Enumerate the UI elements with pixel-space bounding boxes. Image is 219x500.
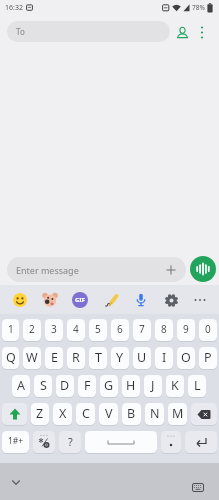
button[interactable]: P: [199, 347, 217, 369]
button[interactable]: G: [100, 375, 118, 397]
button[interactable]: 9: [177, 319, 195, 341]
button[interactable]: D: [56, 375, 74, 397]
button[interactable]: H: [122, 375, 140, 397]
button[interactable]: [196, 23, 208, 41]
button[interactable]: 8: [155, 319, 173, 341]
button[interactable]: [173, 23, 191, 41]
staticText: K: [171, 377, 179, 394]
button[interactable]: I: [155, 347, 173, 369]
staticText: N: [150, 405, 160, 422]
button[interactable]: [193, 293, 207, 307]
staticText: I: [162, 349, 167, 366]
button[interactable]: 1#+: [2, 431, 29, 453]
staticText: 16:32: [5, 3, 23, 13]
button[interactable]: [161, 431, 181, 453]
staticText: W: [26, 349, 38, 366]
staticText: 7: [139, 322, 145, 336]
staticText: 9: [183, 322, 189, 336]
staticText: ?: [68, 434, 73, 449]
button[interactable]: [133, 292, 149, 308]
staticText: Z: [36, 405, 44, 422]
button[interactable]: [42, 292, 58, 308]
button[interactable]: [190, 479, 206, 495]
button[interactable]: [185, 431, 217, 453]
staticText: Q: [6, 349, 16, 366]
button[interactable]: W: [23, 347, 41, 369]
staticText: 4: [73, 322, 79, 336]
button[interactable]: V: [99, 403, 118, 425]
button[interactable]: [2, 403, 27, 425]
staticText: X: [59, 405, 67, 422]
staticText: 3: [51, 322, 57, 336]
button[interactable]: U: [133, 347, 151, 369]
staticText: 1#+: [8, 435, 24, 447]
button[interactable]: [12, 292, 28, 308]
button[interactable]: F: [78, 375, 96, 397]
button[interactable]: X: [53, 403, 72, 425]
staticText: B: [127, 405, 136, 422]
button[interactable]: [85, 431, 157, 453]
button[interactable]: B: [122, 403, 141, 425]
button[interactable]: ?: [59, 431, 81, 453]
staticText: D: [60, 377, 70, 394]
staticText: C: [82, 405, 90, 422]
staticText: T: [95, 349, 102, 366]
staticText: 1: [8, 322, 14, 336]
staticText: U: [137, 349, 147, 366]
button[interactable]: S: [34, 375, 52, 397]
button[interactable]: Q: [2, 347, 19, 369]
button[interactable]: 7: [133, 319, 151, 341]
staticText: P: [204, 349, 212, 366]
staticText: Enter message: [16, 264, 79, 276]
button[interactable]: [103, 292, 119, 308]
button[interactable]: R: [67, 347, 85, 369]
staticText: G: [104, 377, 114, 394]
button[interactable]: M: [168, 403, 187, 425]
staticText: Y: [116, 349, 124, 366]
button[interactable]: Y: [111, 347, 129, 369]
staticText: 6: [117, 322, 123, 336]
staticText: 8: [161, 322, 167, 336]
button[interactable]: A: [12, 375, 30, 397]
staticText: R: [72, 349, 80, 366]
button[interactable]: 3: [45, 319, 63, 341]
staticText: M: [172, 405, 184, 422]
staticText: F: [84, 377, 91, 394]
button[interactable]: To: [7, 21, 170, 42]
button[interactable]: T: [89, 347, 107, 369]
staticText: 2: [29, 322, 35, 336]
button[interactable]: O: [177, 347, 195, 369]
button[interactable]: L: [188, 375, 206, 397]
button[interactable]: J: [144, 375, 162, 397]
button[interactable]: E: [45, 347, 63, 369]
staticText: O: [181, 349, 191, 366]
button[interactable]: 1: [2, 319, 19, 341]
button[interactable]: [191, 403, 217, 425]
staticText: L: [194, 377, 201, 394]
button[interactable]: [33, 431, 55, 453]
button[interactable]: Enter message: [7, 257, 186, 282]
button[interactable]: 5: [89, 319, 107, 341]
staticText: S: [40, 377, 47, 394]
button[interactable]: [190, 256, 216, 282]
button[interactable]: 2: [23, 319, 41, 341]
button[interactable]: K: [166, 375, 184, 397]
button[interactable]: [163, 292, 179, 308]
staticText: 5: [95, 322, 101, 336]
staticText: A: [17, 377, 25, 394]
staticText: To: [16, 26, 25, 37]
staticText: 78%: [192, 3, 205, 12]
button[interactable]: 4: [67, 319, 85, 341]
button[interactable]: 6: [111, 319, 129, 341]
button[interactable]: N: [145, 403, 164, 425]
staticText: V: [105, 405, 113, 422]
button[interactable]: GIF: [72, 292, 88, 308]
button[interactable]: 0: [199, 319, 217, 341]
button[interactable]: Z: [31, 403, 49, 425]
button[interactable]: C: [76, 403, 95, 425]
button[interactable]: [8, 474, 24, 490]
staticText: 0: [205, 322, 211, 336]
staticText: E: [51, 349, 58, 366]
staticText: J: [151, 377, 155, 394]
staticText: GIF: [75, 296, 85, 304]
